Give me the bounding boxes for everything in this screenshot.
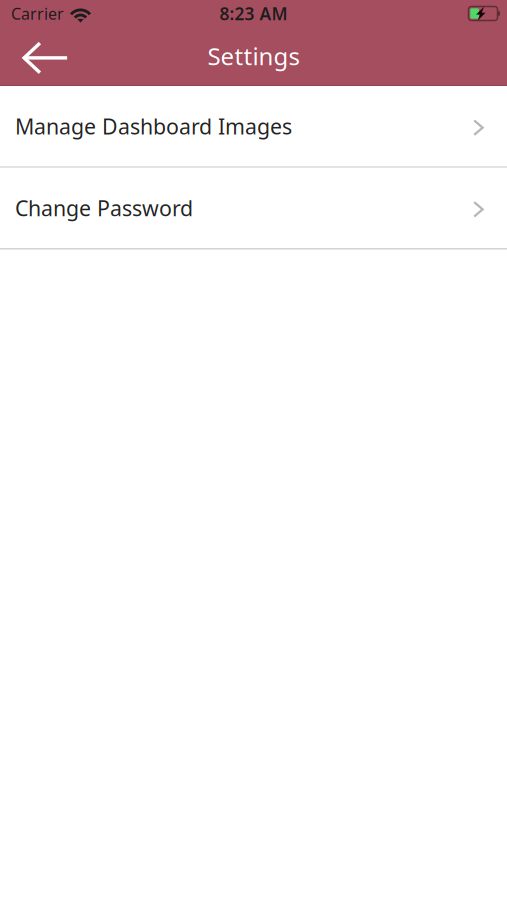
staticText: Carrier (11, 3, 64, 24)
staticText: Manage Dashboard Images (15, 112, 292, 140)
button[interactable]: Manage Dashboard Images (0, 86, 507, 166)
staticText: Settings (207, 40, 299, 72)
staticText: 8:23 AM (219, 2, 287, 25)
staticText: Change Password (15, 194, 193, 222)
button[interactable]: Back (0, 26, 83, 85)
button[interactable]: Change Password (0, 168, 507, 248)
